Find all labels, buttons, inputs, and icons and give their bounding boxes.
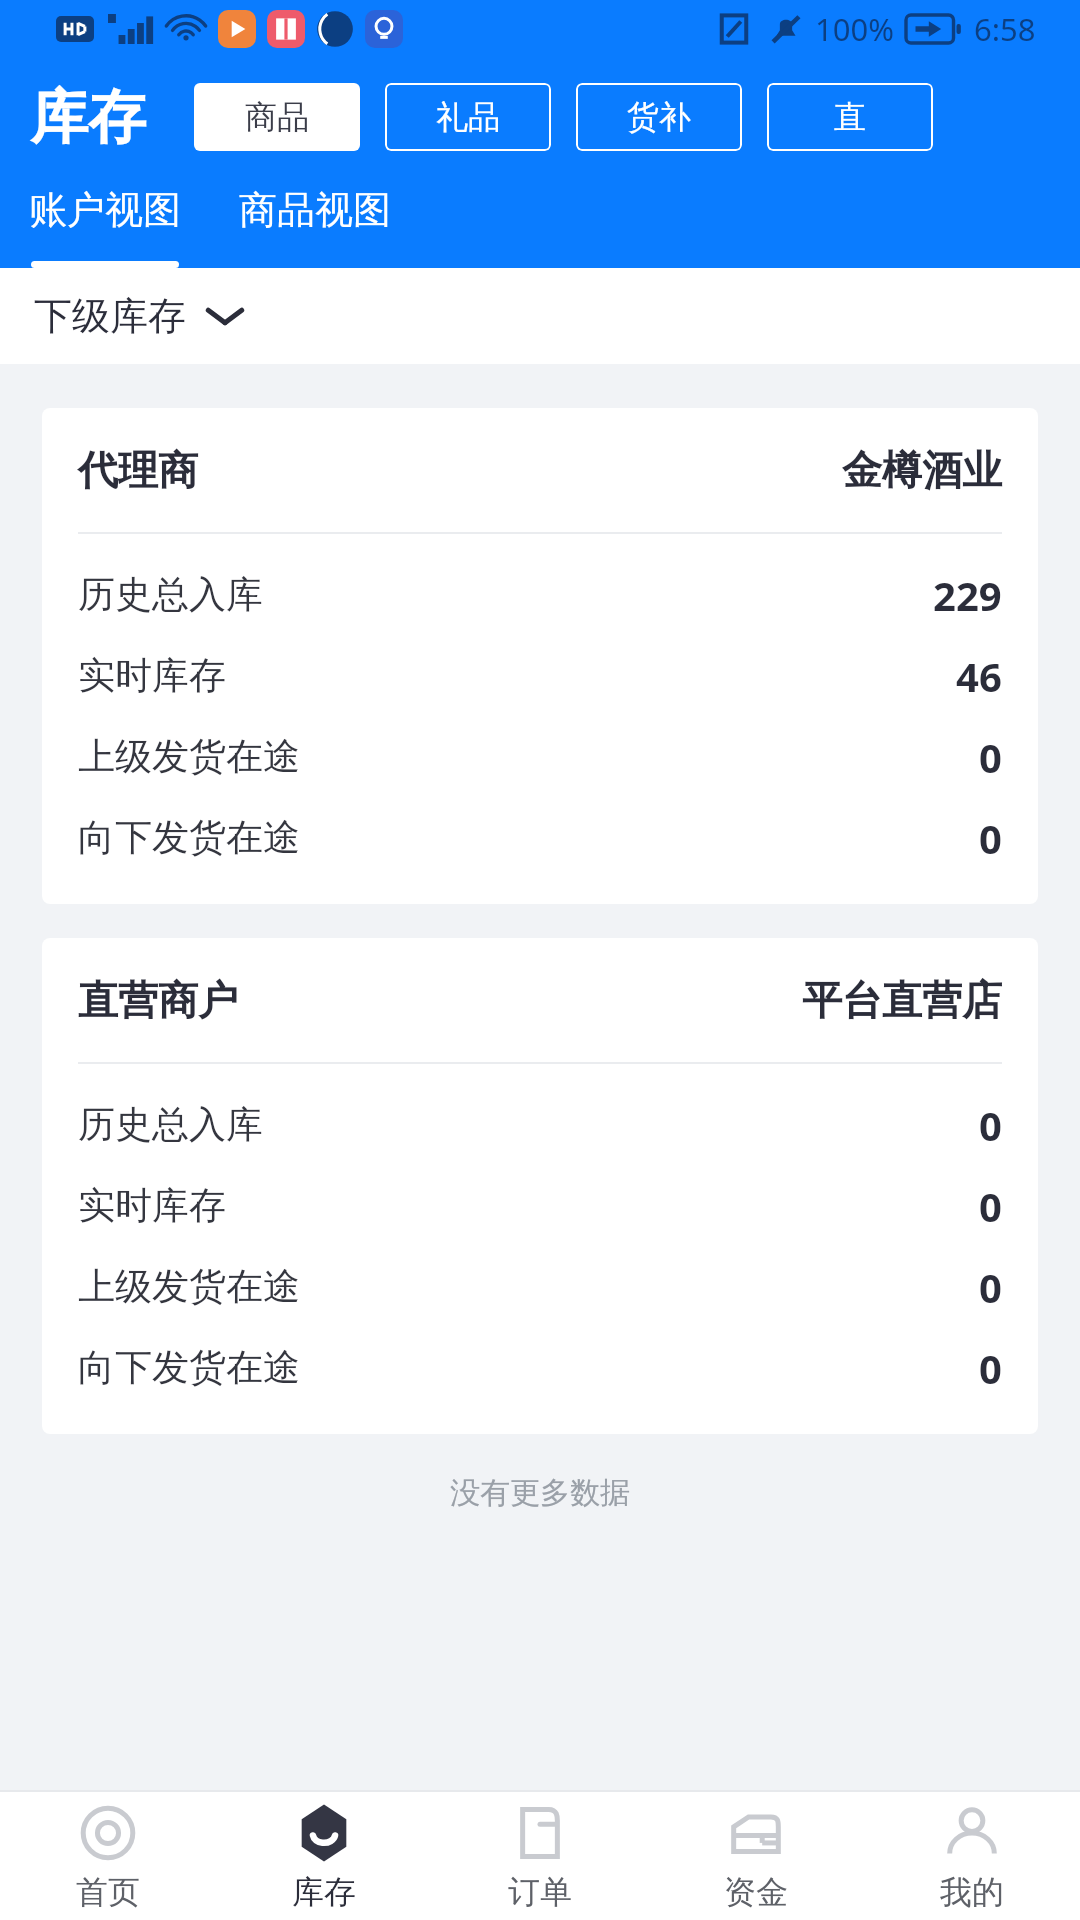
staticText: 0 xyxy=(979,1341,1002,1395)
staticText: 0 xyxy=(979,1260,1002,1314)
staticText: 直 xyxy=(834,97,866,137)
staticText: 礼品 xyxy=(436,97,500,137)
button[interactable]: 库存 xyxy=(216,1792,432,1920)
staticText: 向下发货在途 xyxy=(78,1344,300,1391)
staticText: 向下发货在途 xyxy=(78,814,300,861)
staticText: 库存 xyxy=(292,1872,356,1912)
button[interactable]: 首页 xyxy=(0,1792,216,1920)
staticText: 实时库存 xyxy=(78,1182,226,1229)
staticText: 6:58 xyxy=(974,8,1036,50)
button[interactable]: 直营商户 xyxy=(42,938,1038,1434)
staticText: 代理商 xyxy=(78,445,198,495)
staticText: 货补 xyxy=(627,97,691,137)
button[interactable]: 商品 xyxy=(194,83,360,151)
staticText: 直营商户 xyxy=(78,975,238,1025)
staticText: 上级发货在途 xyxy=(78,733,300,780)
button[interactable]: 代理商 xyxy=(42,408,1038,904)
staticText: 0 xyxy=(979,811,1002,865)
button[interactable]: 我的 xyxy=(864,1792,1080,1920)
staticText: 0 xyxy=(979,730,1002,784)
staticText: 金樽酒业 xyxy=(842,445,1002,495)
button[interactable]: 礼品 xyxy=(385,83,551,151)
staticText: 资金 xyxy=(724,1872,788,1912)
staticText: 0 xyxy=(979,1179,1002,1233)
staticText: 商品 xyxy=(245,97,309,137)
button[interactable]: 下级库存 xyxy=(34,292,244,340)
staticText: 商品视图 xyxy=(239,186,391,234)
staticText: 平台直营店 xyxy=(802,975,1002,1025)
button[interactable]: 账户视图 xyxy=(0,176,210,268)
staticText: 历史总入库 xyxy=(78,1101,263,1148)
staticText: 账户视图 xyxy=(29,186,181,234)
staticText: 下级库存 xyxy=(34,292,186,340)
staticText: 历史总入库 xyxy=(78,571,263,618)
button[interactable]: 货补 xyxy=(576,83,742,151)
staticText: 订单 xyxy=(508,1872,572,1912)
staticText: 没有更多数据 xyxy=(0,1474,1080,1512)
staticText: 库存 xyxy=(30,81,146,154)
button[interactable]: 商品视图 xyxy=(210,176,420,268)
staticText: 100% xyxy=(815,8,894,50)
button[interactable]: 资金 xyxy=(648,1792,864,1920)
staticText: 我的 xyxy=(940,1872,1004,1912)
staticText: 上级发货在途 xyxy=(78,1263,300,1310)
staticText: 46 xyxy=(956,649,1002,703)
staticText: 229 xyxy=(933,568,1002,622)
staticText: 0 xyxy=(979,1098,1002,1152)
button[interactable]: 直 xyxy=(767,83,933,151)
staticText: 首页 xyxy=(76,1872,140,1912)
staticText: 实时库存 xyxy=(78,652,226,699)
button[interactable]: 订单 xyxy=(432,1792,648,1920)
